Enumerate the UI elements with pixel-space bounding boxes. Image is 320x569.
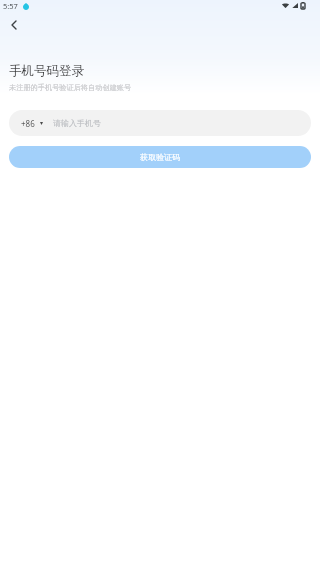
staticText: 5:57	[3, 1, 18, 11]
button[interactable]: 获取验证码	[9, 146, 311, 168]
staticText: 请输入手机号	[53, 118, 101, 128]
button[interactable]: Back	[4, 15, 24, 35]
staticText: 未注册的手机号验证后将自动创建账号	[9, 83, 132, 92]
button[interactable]: 请输入手机号	[48, 110, 311, 136]
staticText: 获取验证码	[140, 152, 180, 162]
button[interactable]: +86	[9, 110, 48, 136]
staticText: 手机号码登录	[9, 63, 84, 79]
staticText: +86	[21, 118, 35, 129]
